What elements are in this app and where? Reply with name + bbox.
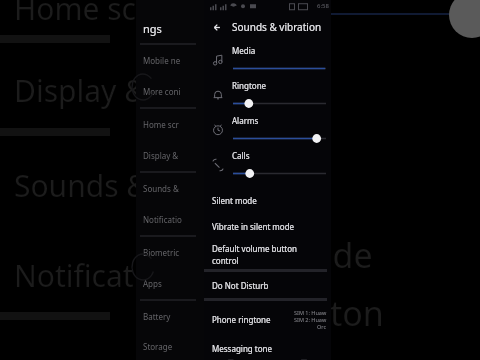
button[interactable]: Phone ringtone: [204, 301, 331, 337]
staticText: co: [142, 318, 179, 360]
staticText: Si: [142, 152, 170, 198]
staticText: Storage: [143, 341, 173, 352]
staticText: Phone ringtone: [212, 314, 294, 325]
staticText: De: [142, 278, 186, 324]
staticText: Notificatio: [14, 255, 160, 296]
staticText: Do Not Disturb: [212, 280, 269, 291]
staticText: ton: [330, 290, 384, 336]
staticText: Orc: [317, 323, 327, 330]
staticText: Apps: [143, 278, 162, 289]
staticText: Sounds & vibration: [232, 20, 322, 34]
staticText: Mobile ne: [143, 55, 181, 66]
button[interactable]: Storage: [136, 332, 204, 360]
staticText: Media: [232, 45, 256, 56]
button[interactable]: Vibrate in silent mode: [204, 213, 331, 239]
staticText: SIM 1: Huaw: [294, 309, 327, 316]
staticText: Alarms: [232, 115, 259, 126]
staticText: Display &: [14, 70, 154, 111]
staticText: Messaging tone: [212, 343, 273, 354]
button[interactable]: Messaging tone: [204, 337, 331, 360]
staticText: Notificatio: [143, 214, 182, 225]
button[interactable]: More coni: [136, 76, 204, 107]
staticText: Display &: [143, 150, 181, 161]
button[interactable]: Ringtone: [204, 77, 331, 112]
button[interactable]: Mobile ne: [136, 45, 204, 76]
staticText: Vibrate in silent mode: [212, 221, 295, 232]
button[interactable]: Do Not Disturb: [204, 272, 331, 298]
staticText: Calls: [232, 150, 250, 161]
staticText: Home scr: [14, 0, 149, 29]
button[interactable]: Display &: [136, 140, 204, 171]
staticText: Vi: [142, 222, 172, 268]
staticText: Home scr: [143, 119, 179, 130]
staticText: 6:58: [317, 2, 329, 10]
button[interactable]: Notificatio: [136, 204, 204, 235]
button[interactable]: Back: [204, 14, 230, 40]
staticText: More coni: [143, 86, 181, 97]
button[interactable]: Silent mode: [204, 187, 331, 213]
button[interactable]: Sounds &: [136, 173, 204, 204]
button[interactable]: Apps: [136, 268, 204, 299]
staticText: Default volume button: [212, 243, 297, 254]
staticText: Silent mode: [212, 195, 257, 206]
staticText: ode: [312, 232, 373, 278]
staticText: Biometric: [143, 247, 180, 258]
button[interactable]: Home scr: [136, 109, 204, 140]
button[interactable]: Alarms: [204, 112, 331, 147]
staticText: Battery: [143, 311, 171, 322]
button[interactable]: Calls: [204, 147, 331, 182]
staticText: Sounds &: [14, 165, 157, 206]
staticText: ngs: [143, 21, 162, 36]
button[interactable]: Battery: [136, 301, 204, 332]
button[interactable]: Media: [204, 42, 331, 77]
staticText: control: [212, 255, 239, 266]
button[interactable]: Default volume button: [204, 239, 331, 269]
staticText: SIM 2: Huaw: [294, 316, 327, 323]
staticText: Ringtone: [232, 80, 267, 91]
staticText: Sounds &: [143, 183, 181, 194]
button[interactable]: Biometric: [136, 237, 204, 268]
